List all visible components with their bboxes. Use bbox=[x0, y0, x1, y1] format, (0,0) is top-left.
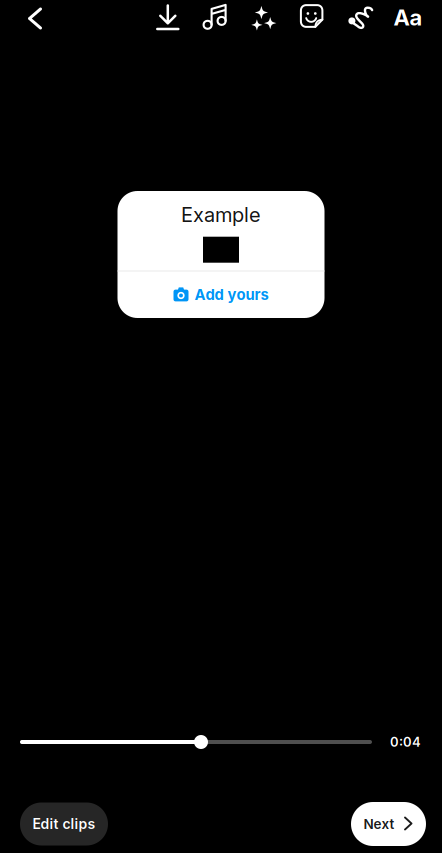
staticText: Aa bbox=[393, 4, 422, 31]
staticText: Example bbox=[181, 202, 261, 227]
button[interactable]: Next bbox=[351, 802, 426, 846]
button[interactable]: Effects bbox=[240, 0, 288, 35]
staticText: 0:04 bbox=[390, 734, 421, 750]
staticText: Edit clips bbox=[32, 815, 95, 832]
button[interactable]: Edit clips bbox=[20, 802, 108, 845]
staticText: Add yours bbox=[194, 285, 268, 303]
button[interactable]: Stickers bbox=[288, 0, 336, 35]
button[interactable]: Back bbox=[10, 0, 60, 35]
button[interactable]: Save bbox=[144, 0, 192, 35]
button[interactable]: Text bbox=[384, 0, 432, 35]
button[interactable]: Draw bbox=[336, 0, 384, 35]
button[interactable]: Music bbox=[192, 0, 240, 35]
button[interactable]: Add yours bbox=[117, 271, 324, 317]
staticText: Next bbox=[363, 816, 394, 832]
